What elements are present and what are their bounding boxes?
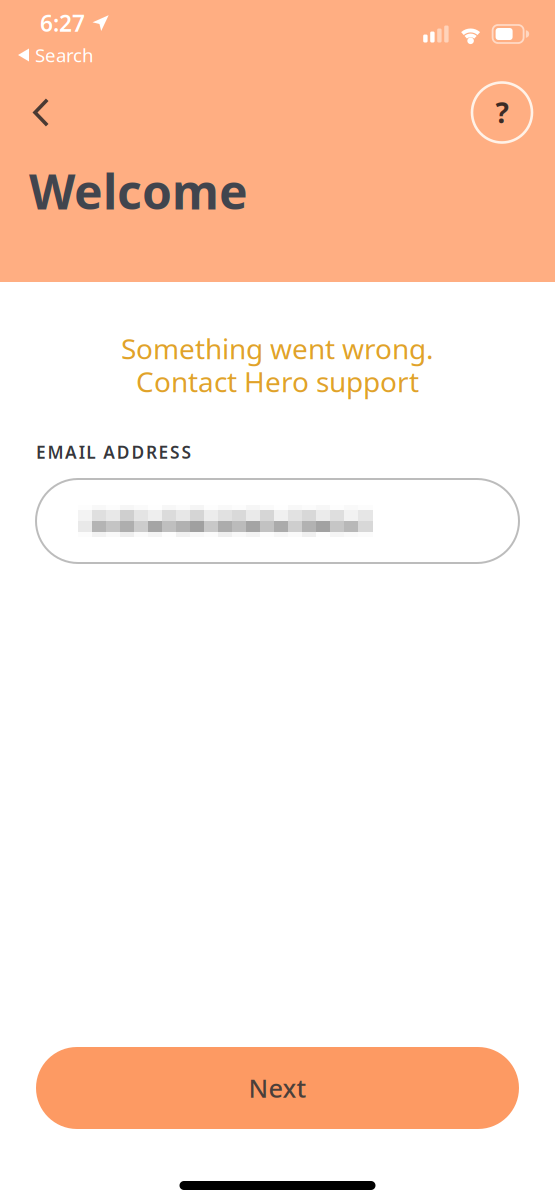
staticText: Next xyxy=(248,1071,306,1105)
button[interactable]: Help xyxy=(472,82,532,142)
button[interactable]: Back xyxy=(0,86,67,139)
staticText: 6:27 xyxy=(40,8,85,38)
staticText: Something went wrong. xyxy=(121,330,434,367)
staticText: Search xyxy=(35,43,94,67)
button[interactable]: Search xyxy=(0,44,94,66)
button[interactable]: Email address xyxy=(36,479,519,563)
staticText: EMAIL ADDRESS xyxy=(36,440,192,463)
button[interactable]: Next xyxy=(36,1047,519,1129)
staticText: ? xyxy=(495,94,508,131)
staticText: Welcome xyxy=(29,159,248,223)
staticText: Contact Hero support xyxy=(136,363,419,400)
